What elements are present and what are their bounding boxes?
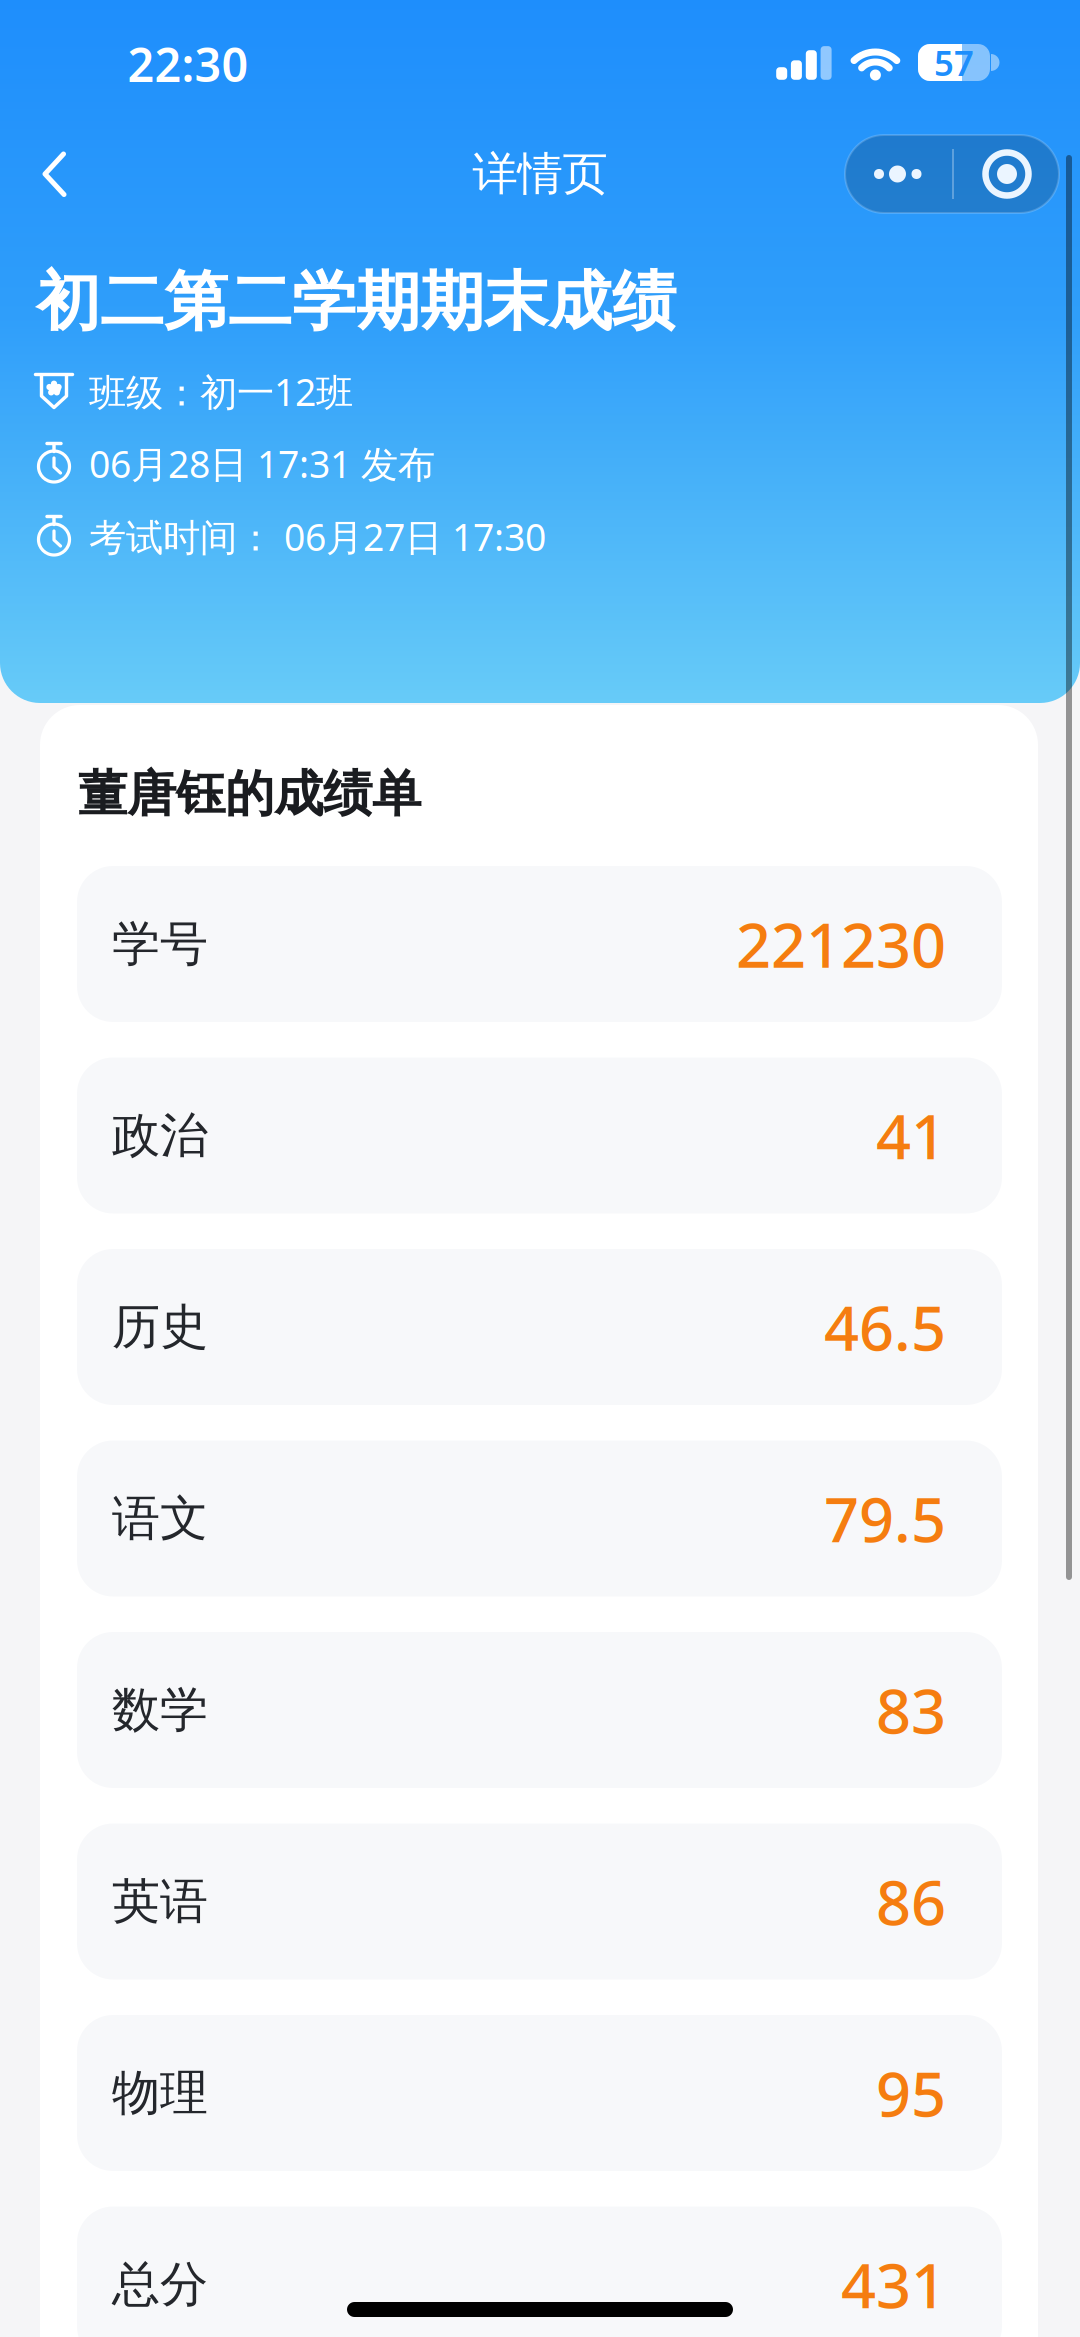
staticText: 数学 <box>112 1680 208 1739</box>
staticText: 46.5 <box>824 1286 946 1368</box>
staticText: 221230 <box>736 903 946 985</box>
staticText: 22:30 <box>127 33 248 95</box>
button[interactable]: Back <box>10 130 98 218</box>
staticText: 详情页 <box>472 146 607 202</box>
staticText: 班级：初一12班 <box>89 367 353 416</box>
staticText: 语文 <box>112 1489 208 1548</box>
staticText: 79.5 <box>824 1478 946 1559</box>
staticText: 06月28日 17:31 发布 <box>89 439 435 488</box>
button[interactable]: More <box>845 135 952 213</box>
staticText: 考试时间： 06月27日 17:30 <box>89 512 546 561</box>
staticText: 83 <box>876 1669 946 1751</box>
staticText: 物理 <box>112 2063 208 2122</box>
staticText: 86 <box>876 1861 946 1942</box>
button[interactable]: Close <box>952 135 1059 213</box>
staticText: 431 <box>841 2244 946 2325</box>
staticText: 政治 <box>112 1106 208 1165</box>
staticText: 英语 <box>112 1872 208 1931</box>
staticText: 41 <box>876 1095 946 1176</box>
staticText: 95 <box>876 2052 946 2134</box>
staticText: 初二第二学期期末成绩 <box>36 263 676 341</box>
staticText: 总分 <box>112 2255 208 2314</box>
staticText: 57 <box>934 39 974 85</box>
staticText: 学号 <box>112 914 208 973</box>
staticText: 董唐钰的成绩单 <box>78 764 421 824</box>
staticText: 历史 <box>112 1297 208 1356</box>
